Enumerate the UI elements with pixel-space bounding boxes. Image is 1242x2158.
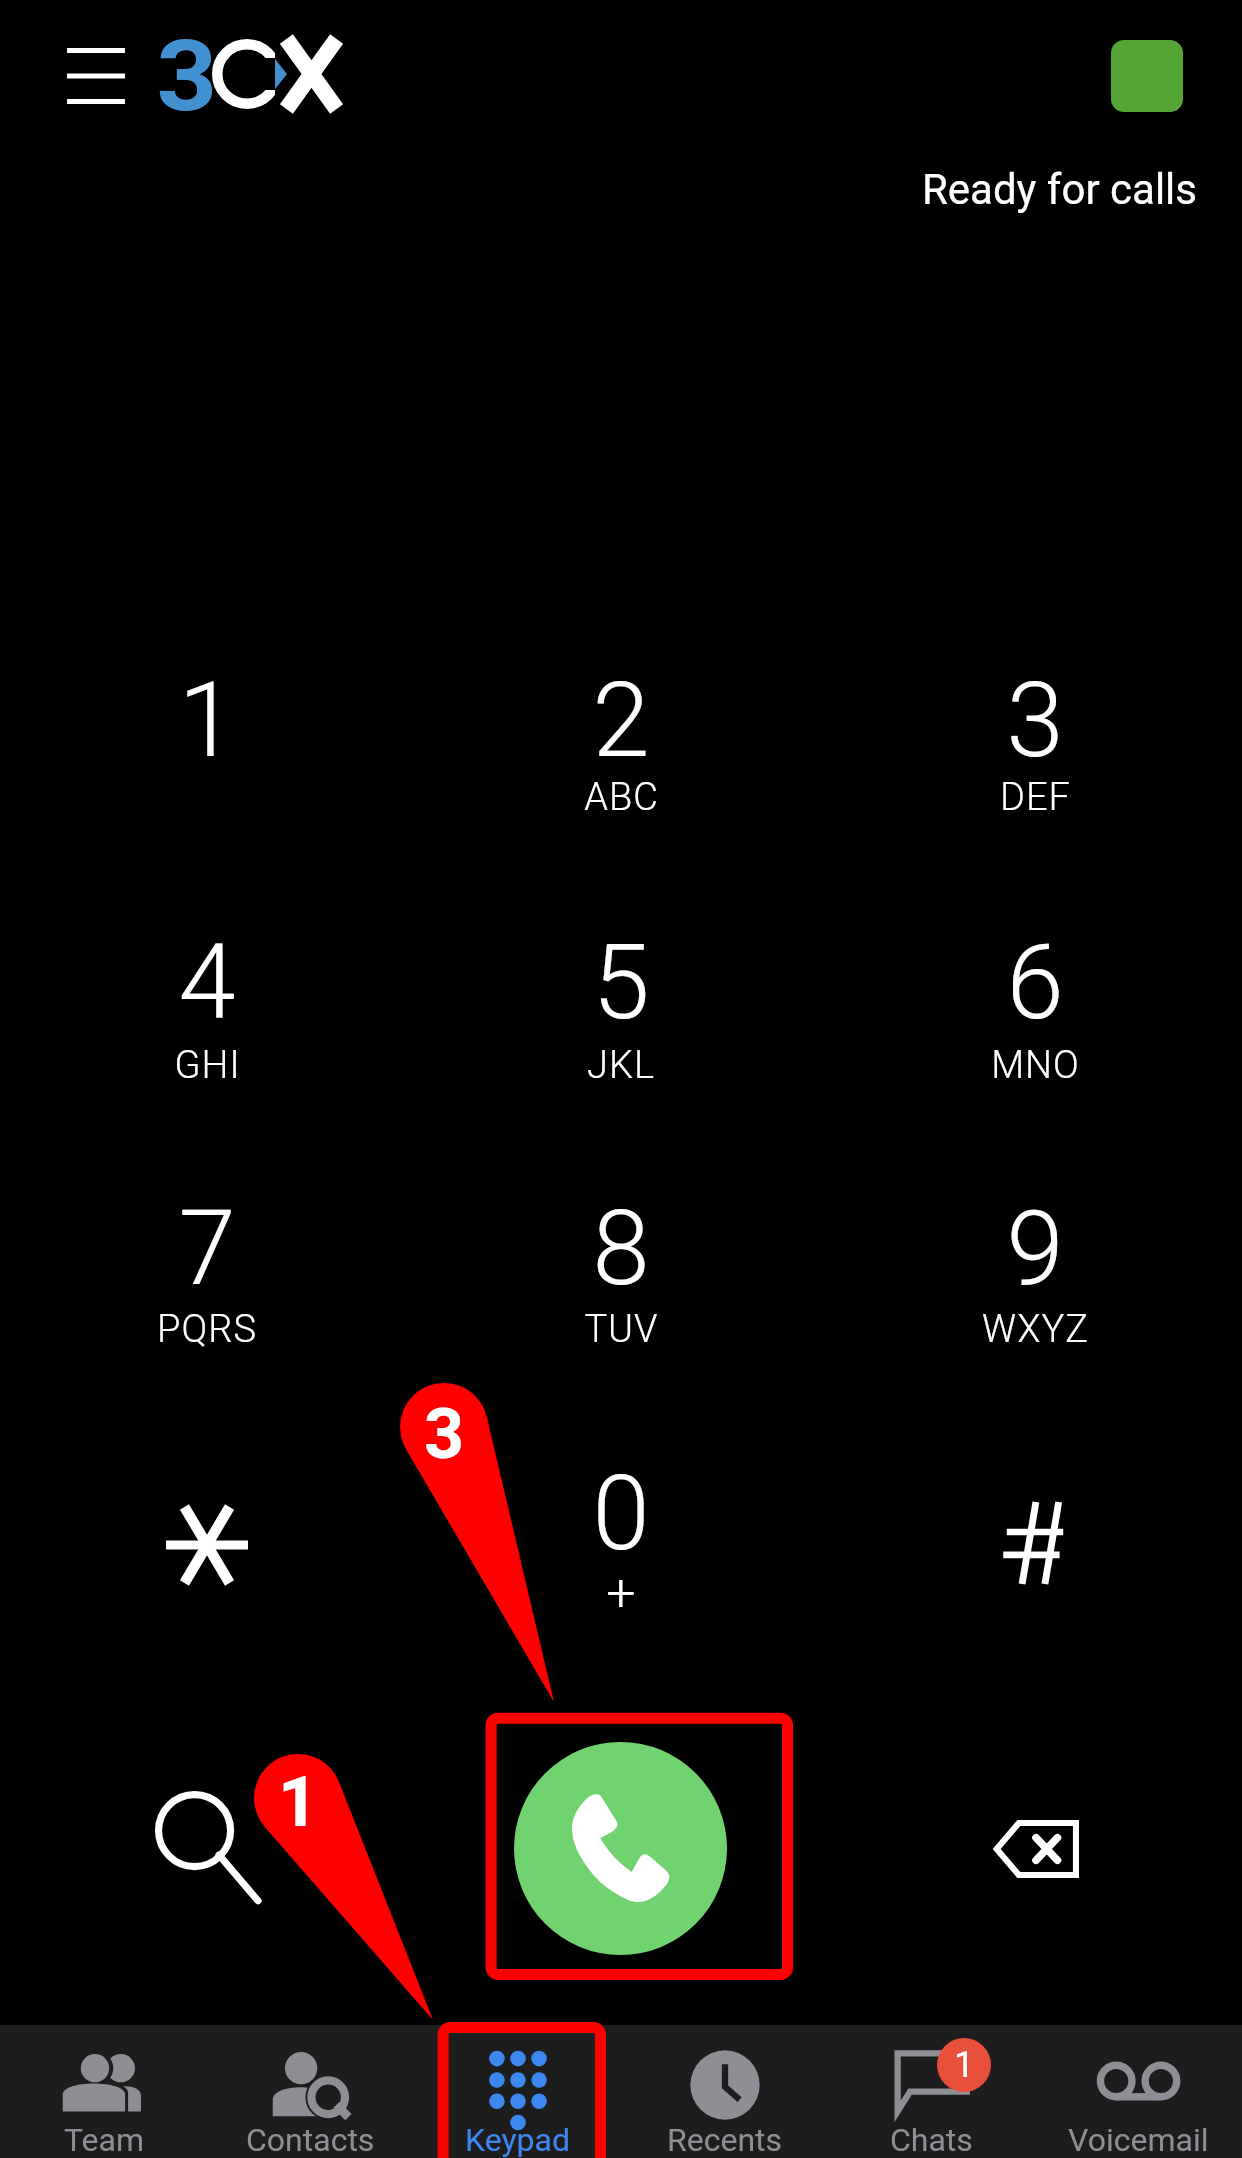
button[interactable]: 2 [414,615,828,845]
button[interactable]: 1 [0,615,414,845]
staticText: 6 [1006,922,1064,1032]
staticText: 3 [424,1393,465,1473]
staticText: 9 [1006,1188,1064,1298]
staticText: GHI [174,1043,241,1088]
button[interactable]: Voicemail [1035,2025,1242,2158]
staticText: 8 [592,1188,650,1298]
staticText: Ready for calls [703,165,1197,214]
button[interactable]: Status available [1111,40,1183,112]
button[interactable]: 9 [828,1143,1242,1373]
button[interactable]: 3 [828,615,1242,845]
staticText: 3 [1006,660,1064,770]
staticText: MNO [991,1043,1080,1088]
button[interactable]: 4 [0,877,414,1107]
button[interactable]: 0 [414,1408,828,1608]
button[interactable]: Star [0,1408,414,1608]
staticText: Keypad [465,2121,570,2158]
staticText: Voicemail [1068,2121,1209,2158]
button[interactable]: Team [0,2025,207,2158]
staticText: 1 [278,1761,319,1841]
button[interactable]: Recents [621,2025,828,2158]
staticText: 5 [592,922,650,1032]
staticText: ABC [584,775,659,820]
staticText: PQRS [157,1307,257,1352]
staticText: 7 [178,1188,236,1298]
staticText: 0 [592,1453,650,1563]
button[interactable]: Call [514,1742,727,1955]
staticText: TUV [584,1307,659,1352]
button[interactable]: 1 [828,2025,1035,2158]
staticText: + [606,1563,637,1623]
button[interactable]: Backspace [961,1774,1111,1924]
staticText: 1 [954,2044,975,2086]
staticText: DEF [1000,775,1071,820]
staticText: 3 [156,18,217,134]
button[interactable]: 5 [414,877,828,1107]
staticText: 4 [178,922,236,1032]
button[interactable]: Search [144,1779,294,1929]
staticText: JKL [587,1043,655,1088]
staticText: Chats [890,2121,973,2158]
staticText: 2 [592,660,650,770]
staticText: Recents [667,2121,783,2158]
staticText: 1 [178,660,236,770]
staticText: Contacts [246,2121,375,2158]
button[interactable]: 8 [414,1143,828,1373]
staticText: WXYZ [982,1307,1089,1352]
button[interactable]: 7 [0,1143,414,1373]
button[interactable]: Contacts [207,2025,414,2158]
button[interactable]: Hash [828,1408,1242,1608]
button[interactable]: Keypad [414,2025,621,2158]
staticText: Team [64,2121,144,2158]
button[interactable]: Menu [50,33,142,118]
button[interactable]: 6 [828,877,1242,1107]
